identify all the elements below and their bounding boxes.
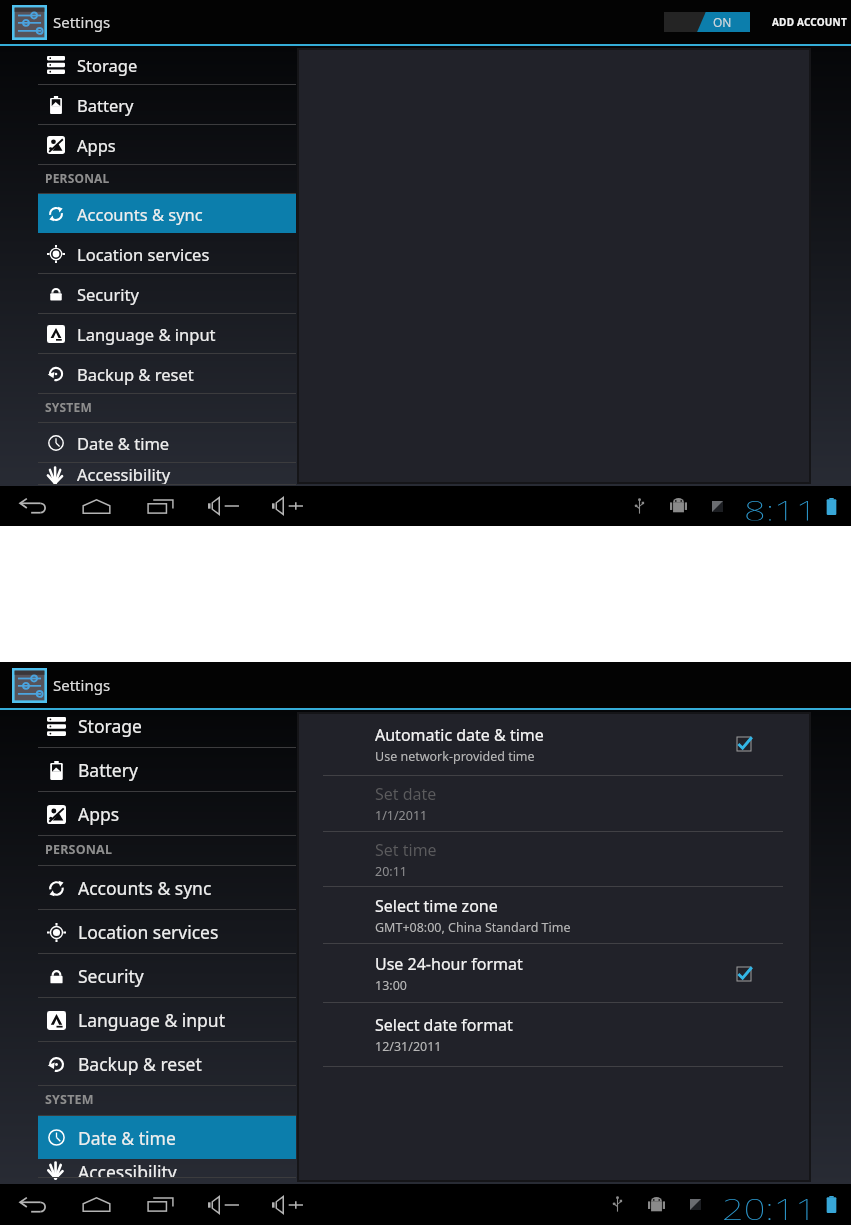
staticText: GMT+08:00, China Standard Time <box>375 919 571 936</box>
staticText: Language & input <box>78 1008 225 1032</box>
button[interactable]: Apps <box>0 125 296 165</box>
staticText: ON <box>713 14 732 30</box>
button[interactable]: Select time zone <box>299 887 809 944</box>
button[interactable]: ADD ACCOUNT <box>770 10 849 34</box>
button[interactable]: Select date format <box>299 1003 809 1067</box>
staticText: 8:11 <box>744 491 816 521</box>
staticText: Backup & reset <box>78 1052 202 1076</box>
button[interactable]: Recent apps <box>138 486 182 526</box>
button[interactable]: Battery <box>0 85 296 125</box>
staticText: 12/31/2011 <box>375 1038 442 1055</box>
staticText: Settings <box>53 675 111 695</box>
button[interactable]: Volume up <box>266 486 310 526</box>
staticText: Battery <box>78 758 138 782</box>
button[interactable]: Accounts & sync <box>0 866 296 910</box>
button[interactable]: Date & time <box>0 423 296 463</box>
staticText: SYSTEM <box>45 1091 94 1108</box>
staticText: Security <box>77 283 139 305</box>
staticText: Accessibility <box>77 463 171 485</box>
staticText: Select time zone <box>375 895 498 917</box>
staticText: Apps <box>77 134 116 156</box>
button[interactable]: ON <box>664 12 750 32</box>
button[interactable]: Volume up <box>266 1184 310 1225</box>
staticText: 20:11 <box>722 1188 816 1220</box>
button[interactable]: Location services <box>0 234 296 274</box>
staticText: Set date <box>375 783 437 805</box>
button[interactable]: Accessibility <box>0 1160 296 1178</box>
staticText: Battery <box>77 94 134 116</box>
staticText: 20:11 <box>375 863 407 880</box>
staticText: Accounts & sync <box>78 876 212 900</box>
button[interactable]: Location services <box>0 910 296 954</box>
button[interactable]: Back <box>10 486 54 526</box>
staticText: ADD ACCOUNT <box>772 15 847 29</box>
button[interactable]: Set time <box>299 832 809 887</box>
button[interactable]: Security <box>0 954 296 998</box>
staticText: 13:00 <box>375 977 407 994</box>
button[interactable]: Volume down <box>202 486 246 526</box>
staticText: 1/1/2011 <box>375 807 428 824</box>
staticText: Storage <box>78 714 142 738</box>
staticText: Storage <box>77 54 138 76</box>
button[interactable]: Apps <box>0 792 296 836</box>
button[interactable]: Language & input <box>0 314 296 354</box>
staticText: Set time <box>375 839 437 861</box>
staticText: Date & time <box>78 1126 176 1150</box>
button[interactable]: Accessibility <box>0 463 296 485</box>
staticText: Date & time <box>77 432 170 454</box>
staticText: PERSONAL <box>45 841 113 858</box>
staticText: Security <box>78 964 144 988</box>
button[interactable]: Automatic date & time <box>299 714 809 776</box>
staticText: Use 24-hour format <box>375 953 523 975</box>
button[interactable]: Backup & reset <box>0 354 296 394</box>
staticText: Accessibility <box>78 1160 177 1178</box>
staticText: SYSTEM <box>45 399 92 415</box>
staticText: Backup & reset <box>77 363 194 385</box>
button[interactable]: Home <box>74 1184 118 1225</box>
staticText: Location services <box>77 243 210 265</box>
button[interactable]: Set date <box>299 776 809 832</box>
staticText: Settings <box>53 12 111 32</box>
button[interactable]: Storage <box>0 710 296 748</box>
button[interactable]: Accounts & sync <box>38 194 296 233</box>
button[interactable]: Security <box>0 274 296 314</box>
staticText: Language & input <box>77 323 216 345</box>
button[interactable]: Battery <box>0 748 296 792</box>
button[interactable]: Home <box>74 486 118 526</box>
staticText: Location services <box>78 920 219 944</box>
button[interactable]: Volume down <box>202 1184 246 1225</box>
button[interactable]: Backup & reset <box>0 1042 296 1086</box>
button[interactable]: Recent apps <box>138 1184 182 1225</box>
staticText: Automatic date & time <box>375 724 544 746</box>
button[interactable]: Date & time <box>38 1116 296 1159</box>
staticText: Use network-provided time <box>375 748 535 765</box>
button[interactable]: Storage <box>0 46 296 85</box>
staticText: PERSONAL <box>45 170 110 186</box>
staticText: Apps <box>78 802 120 826</box>
staticText: Select date format <box>375 1014 513 1036</box>
button[interactable]: Language & input <box>0 998 296 1042</box>
button[interactable]: Back <box>10 1184 54 1225</box>
button[interactable]: Use 24-hour format <box>299 944 809 1003</box>
staticText: Accounts & sync <box>77 203 203 225</box>
